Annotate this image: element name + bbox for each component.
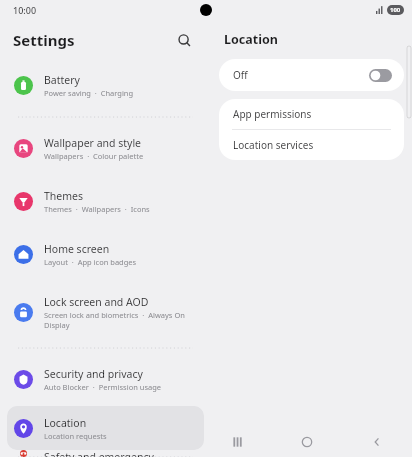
staticText: 10:00 <box>13 4 37 16</box>
staticText: Home screen <box>44 242 110 256</box>
button[interactable]: Search <box>171 27 197 53</box>
staticText: Auto Blocker · Permission usage <box>44 382 162 392</box>
staticText: Off <box>233 68 248 82</box>
staticText: Lock screen and AOD <box>44 295 149 309</box>
staticText: Settings <box>13 30 75 50</box>
button[interactable]: Home screen <box>7 228 204 281</box>
button[interactable]: Location <box>7 406 204 450</box>
staticText: App permissions <box>233 107 312 121</box>
staticText: 100 <box>390 6 401 14</box>
button[interactable]: Lock screen and AOD <box>7 281 204 343</box>
staticText: Safety and emergency <box>44 450 154 457</box>
button[interactable]: App permissions <box>219 99 404 129</box>
staticText: Themes <box>44 189 84 203</box>
button[interactable]: Location services <box>219 130 404 160</box>
button[interactable]: Recents <box>201 427 272 457</box>
staticText: Wallpapers · Colour palette <box>44 151 144 161</box>
staticText: Wallpaper and style <box>44 136 142 150</box>
staticText: Location <box>224 31 278 48</box>
staticText: Location <box>44 416 87 430</box>
staticText: Layout · App icon badges <box>44 257 137 267</box>
staticText: Location services <box>233 138 314 152</box>
staticText: Themes · Wallpapers · Icons <box>44 204 150 214</box>
button[interactable]: Security and privacy <box>7 353 204 406</box>
button[interactable]: Safety and emergency <box>7 450 204 457</box>
staticText: Battery <box>44 73 80 87</box>
button[interactable]: Home <box>272 427 342 457</box>
staticText: Power saving · Charging <box>44 88 134 98</box>
button[interactable]: Back <box>342 427 412 457</box>
button[interactable]: Off <box>219 59 404 91</box>
button[interactable]: Wallpaper and style <box>7 122 204 175</box>
staticText: Location requests <box>44 431 107 441</box>
staticText: Screen lock and biometrics · Always On D… <box>44 310 185 330</box>
button[interactable]: Themes <box>7 175 204 228</box>
staticText: Security and privacy <box>44 367 143 381</box>
button[interactable]: Battery <box>7 59 204 112</box>
